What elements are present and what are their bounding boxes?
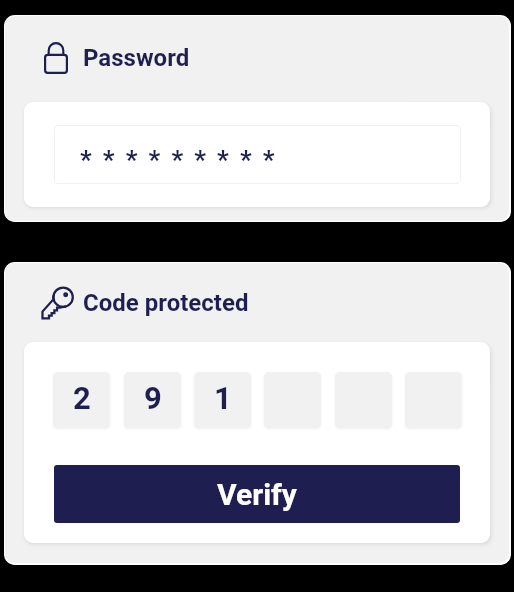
staticText: Verify — [217, 477, 297, 512]
staticText: 2 — [73, 380, 91, 416]
staticText: Password — [83, 44, 190, 72]
other: Password locked — [44, 42, 68, 74]
button[interactable]: 9 — [124, 372, 181, 428]
button[interactable]: ********* — [54, 125, 461, 184]
staticText: 9 — [144, 380, 162, 416]
staticText: 1 — [214, 380, 232, 416]
button[interactable]: Verify — [54, 465, 460, 523]
button[interactable]: 1 — [194, 372, 251, 428]
other: Code protected — [41, 287, 74, 320]
staticText: Code protected — [83, 289, 249, 317]
button[interactable]: 2 — [53, 372, 110, 428]
staticText: ********* — [80, 145, 286, 175]
